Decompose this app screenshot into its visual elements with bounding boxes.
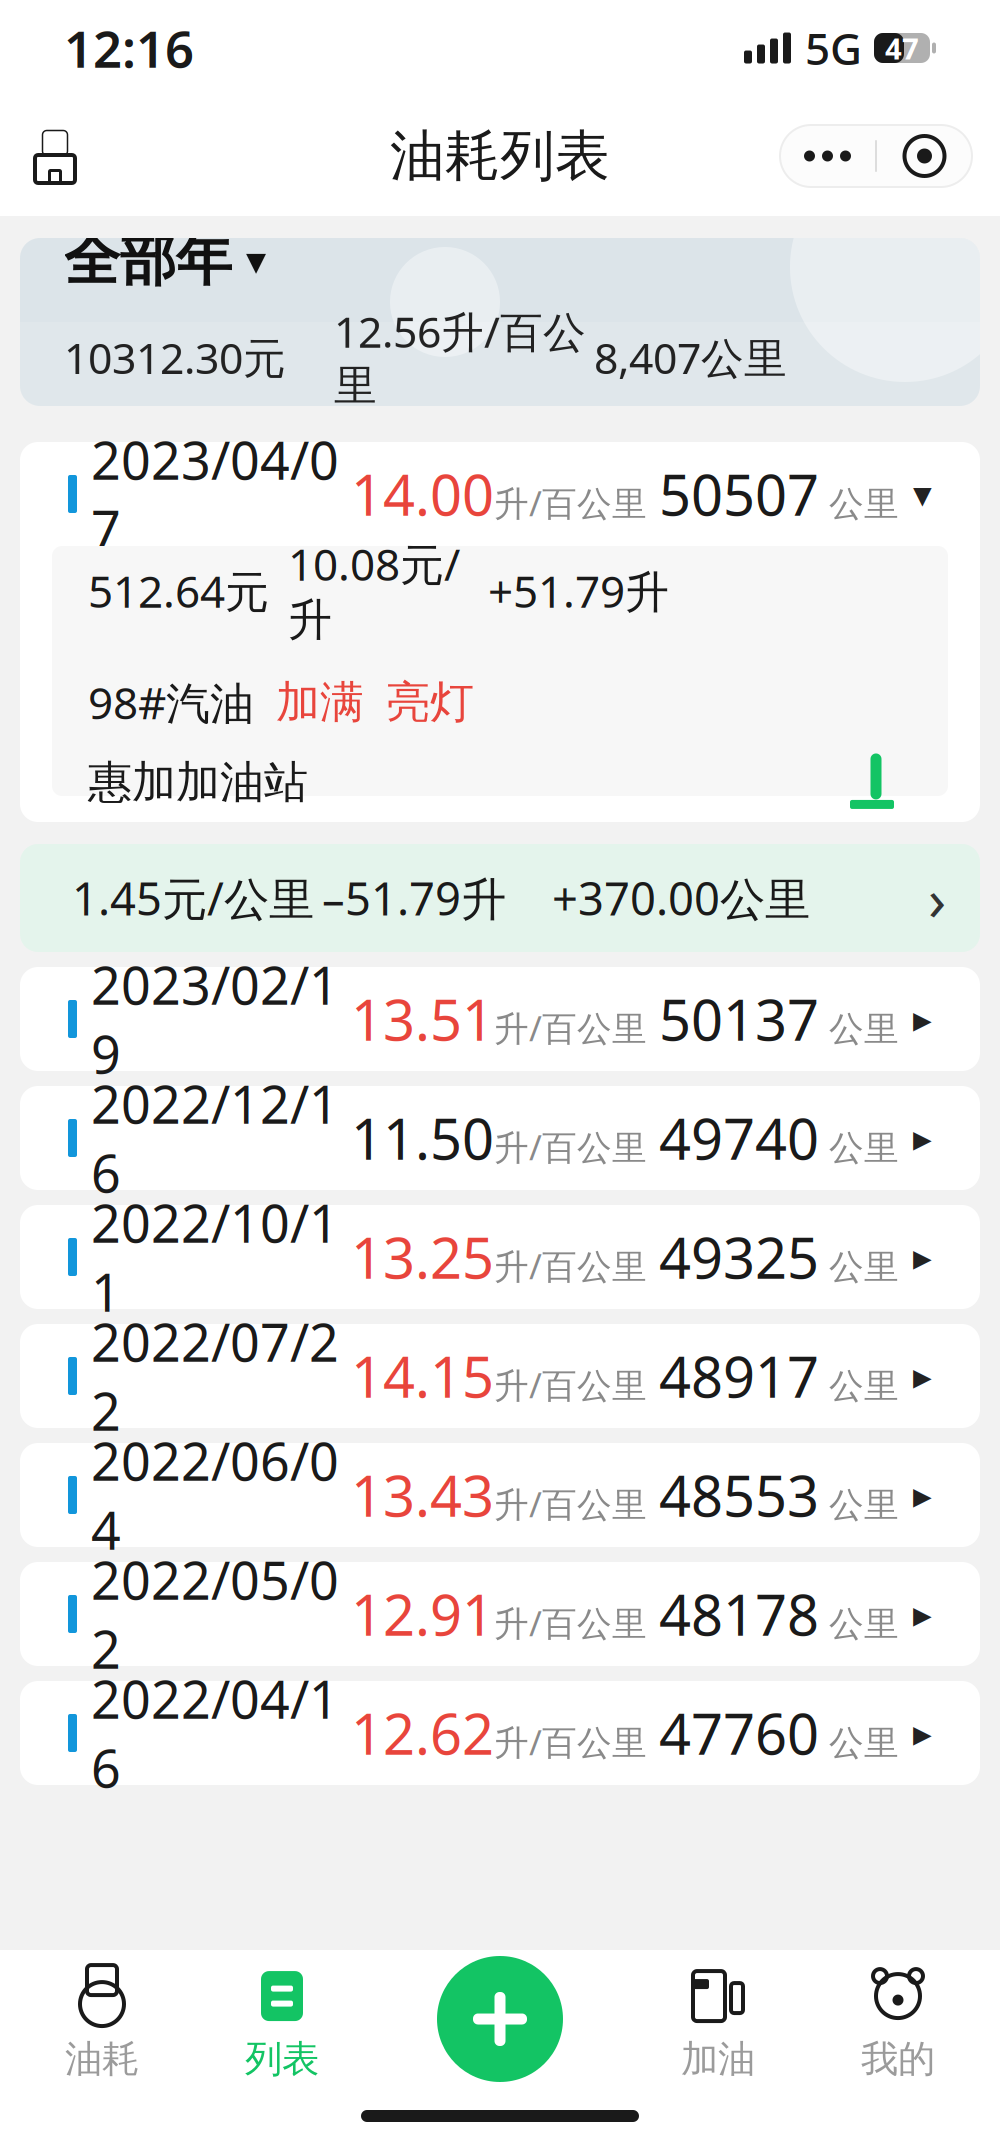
staticText: 48178 <box>659 1577 819 1651</box>
button[interactable]: 2022/05/02 <box>0 1562 1000 1666</box>
staticText: 公里 <box>829 1603 899 1645</box>
staticText: 升/百公里 <box>494 480 647 526</box>
button[interactable]: 更多 <box>780 125 875 187</box>
staticText: 2022/05/02 <box>91 1545 339 1683</box>
staticText: 加满 <box>276 675 364 729</box>
staticText: 14.00 <box>351 457 494 531</box>
staticText: 2023/02/19 <box>91 950 339 1088</box>
staticText: ▸ <box>913 998 932 1040</box>
staticText: 5G <box>805 19 862 77</box>
staticText: 加油 <box>681 2036 755 2082</box>
staticText: 2022/04/16 <box>91 1664 339 1802</box>
staticText: 14.15 <box>351 1339 494 1413</box>
button[interactable]: 2022/07/22 <box>0 1324 1000 1428</box>
staticText: 公里 <box>829 1127 899 1169</box>
staticText: 11.50 <box>351 1101 494 1175</box>
button[interactable]: 关闭 <box>877 125 972 187</box>
staticText: 2022/12/16 <box>91 1069 339 1207</box>
button[interactable]: 油耗 <box>12 1965 192 2085</box>
staticText: 升/百公里 <box>494 1719 647 1765</box>
staticText: ▾ <box>246 238 266 283</box>
button[interactable]: 2022/10/11 <box>0 1205 1000 1309</box>
staticText: 50507 <box>659 457 819 531</box>
staticText: 公里 <box>829 1365 899 1407</box>
staticText: ▸ <box>913 1236 932 1278</box>
staticText: 2022/06/04 <box>91 1426 339 1564</box>
button[interactable]: 2022/04/16 <box>0 1681 1000 1785</box>
staticText: 13.43 <box>351 1458 494 1532</box>
button[interactable]: 2022/12/16 <box>0 1086 1000 1190</box>
staticText: 12.91 <box>351 1577 494 1651</box>
staticText: 512.64元 <box>88 562 269 620</box>
staticText: ▸ <box>913 1355 932 1397</box>
staticText: 12:16 <box>64 14 194 82</box>
staticText: 我的 <box>861 2036 935 2082</box>
staticText: 49325 <box>659 1220 819 1294</box>
staticText: ▾ <box>913 473 932 515</box>
staticText: 公里 <box>829 483 899 525</box>
staticText: 13.25 <box>351 1220 494 1294</box>
staticText: ▸ <box>913 1117 932 1159</box>
staticText: 油耗 <box>65 2036 139 2082</box>
staticText: 1.45元/公里 <box>72 868 314 928</box>
staticText: 49740 <box>659 1101 819 1175</box>
staticText: 升/百公里 <box>494 1481 647 1527</box>
button[interactable]: 编辑 <box>846 753 898 811</box>
staticText: 油耗列表 <box>390 122 610 189</box>
staticText: 公里 <box>829 1008 899 1050</box>
staticText: +370.00公里 <box>552 868 810 928</box>
staticText: ▸ <box>913 1593 932 1635</box>
staticText: 48917 <box>659 1339 819 1413</box>
staticText: ▸ <box>913 1712 932 1754</box>
staticText: 公里 <box>829 1484 899 1526</box>
button[interactable]: 2022/06/04 <box>0 1443 1000 1547</box>
staticText: 亮灯 <box>386 675 474 729</box>
staticText: 全部年 <box>64 226 232 295</box>
staticText: 98#汽油 <box>88 673 254 731</box>
staticText: 2023/04/07 <box>91 425 339 563</box>
staticText: 50137 <box>659 982 819 1056</box>
staticText: 升/百公里 <box>494 1005 647 1051</box>
staticText: 列表 <box>245 2036 319 2082</box>
staticText: 47760 <box>659 1696 819 1770</box>
button[interactable]: 首页 <box>28 127 82 185</box>
staticText: 48553 <box>659 1458 819 1532</box>
staticText: 升/百公里 <box>494 1600 647 1646</box>
staticText: 12.56升/百公里 <box>334 303 586 412</box>
staticText: 升/百公里 <box>494 1124 647 1170</box>
button[interactable]: 2023/04/07 <box>20 442 980 546</box>
staticText: 升/百公里 <box>494 1362 647 1408</box>
staticText: 公里 <box>829 1722 899 1764</box>
staticText: +51.79升 <box>488 562 669 620</box>
button[interactable]: 我的 <box>808 1965 988 2085</box>
staticText: 47 <box>885 28 919 67</box>
button[interactable]: 加油 <box>628 1965 808 2085</box>
staticText: 10312.30元 <box>64 329 286 386</box>
staticText: 13.51 <box>351 982 494 1056</box>
staticText: 12.62 <box>351 1696 494 1770</box>
staticText: 8,407公里 <box>594 329 787 386</box>
staticText: › <box>928 859 946 937</box>
button[interactable]: 全部年 <box>64 226 266 295</box>
button[interactable]: 列表 <box>192 1965 372 2085</box>
staticText: –51.79升 <box>322 868 506 928</box>
button[interactable]: 1.45元/公里 <box>0 844 1000 952</box>
staticText: ▸ <box>913 1474 932 1516</box>
button[interactable]: 添加记录 <box>430 1949 570 2089</box>
staticText: 10.08元/升 <box>288 534 460 647</box>
staticText: 2022/10/11 <box>91 1188 339 1326</box>
staticText: 2022/07/22 <box>91 1307 339 1445</box>
staticText: 公里 <box>829 1246 899 1288</box>
staticText: 升/百公里 <box>494 1243 647 1289</box>
button[interactable]: 2023/02/19 <box>0 967 1000 1071</box>
staticText: 惠加加油站 <box>88 755 308 809</box>
